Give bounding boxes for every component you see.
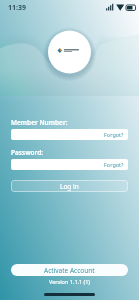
staticText: 11:39 [8,3,26,13]
staticText: Activate Account [44,266,95,275]
staticText: Member Number: [11,118,68,127]
button[interactable]: Forgot? [11,159,128,170]
button[interactable]: Activate Account [11,264,128,276]
button[interactable]: Forgot? [11,129,128,140]
staticText: Password: [11,148,44,157]
button[interactable]: Log in [11,180,128,192]
staticText: Forgot? [104,131,124,138]
staticText: Log in [60,182,79,191]
staticText: Forgot? [104,161,124,168]
staticText: Version 1.1.1 (1) [11,278,128,285]
